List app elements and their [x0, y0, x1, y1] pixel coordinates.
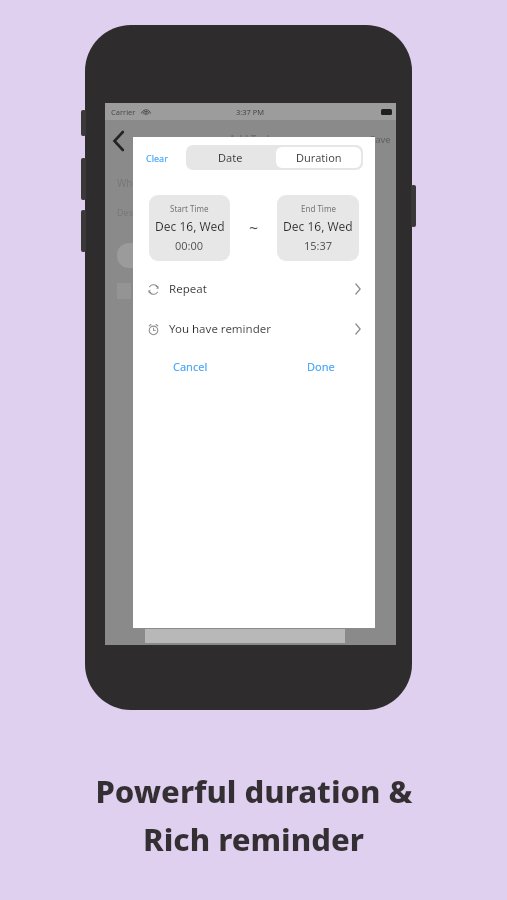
staticText: Add Task — [229, 132, 273, 146]
staticText: 3:37 PM — [236, 107, 265, 117]
staticText: Start Time — [170, 203, 209, 214]
staticText: Clear — [146, 152, 168, 164]
button[interactable]: Start Time — [149, 195, 230, 261]
staticText: Powerful duration & — [95, 770, 413, 812]
other: Back — [113, 132, 125, 150]
staticText: ~ — [249, 217, 259, 239]
staticText: End Time — [301, 203, 336, 214]
staticText: You have reminder — [169, 321, 272, 337]
staticText: Rich reminder — [143, 818, 364, 860]
staticText: Date — [218, 150, 243, 165]
button[interactable]: You have reminder — [133, 314, 375, 344]
staticText: Carrier — [111, 107, 136, 117]
staticText: What do you want to do? — [117, 176, 234, 190]
staticText: Description — [117, 206, 166, 218]
button[interactable]: Duration — [276, 147, 361, 168]
staticText: Dec 16, Wed — [155, 218, 225, 234]
staticText: Save — [370, 133, 391, 146]
button[interactable]: Repeat — [133, 274, 375, 304]
staticText: 00:00 — [175, 238, 204, 253]
button[interactable]: Done — [297, 355, 345, 378]
staticText: Done — [307, 359, 335, 374]
staticText: Cancel — [173, 359, 208, 374]
button[interactable]: Clear — [143, 150, 171, 166]
staticText: Dec 16, Wed — [283, 218, 353, 234]
button[interactable]: Date — [186, 145, 274, 170]
staticText: Repeat — [169, 281, 207, 297]
staticText: Duration — [296, 150, 342, 165]
staticText: 15:37 — [304, 238, 333, 253]
button[interactable]: Cancel — [163, 355, 218, 378]
button[interactable]: End Time — [277, 195, 359, 261]
